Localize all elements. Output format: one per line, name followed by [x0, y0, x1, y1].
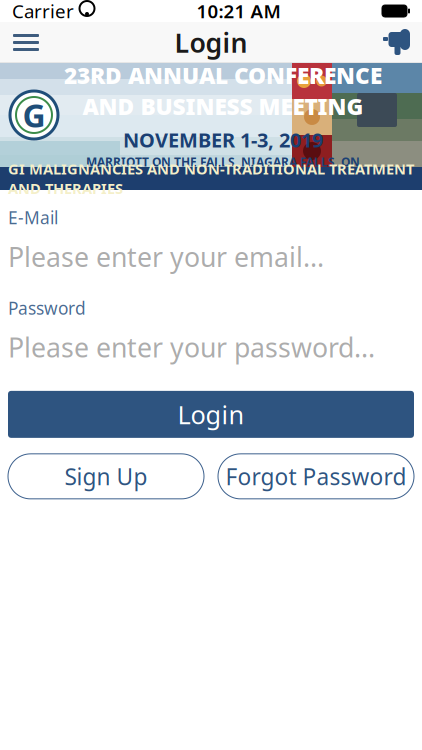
button[interactable]: Forgot Password [218, 454, 414, 499]
staticText: Sign Up [64, 461, 147, 491]
staticText: Please enter your email... [8, 239, 324, 274]
staticText: 10:21 AM [196, 0, 280, 23]
button[interactable]: Login [8, 391, 414, 438]
staticText: Login [174, 25, 247, 60]
staticText: 23RD ANNUAL CONFERENCE [64, 60, 382, 90]
staticText: AND BUSINESS MEETING [82, 91, 363, 121]
staticText: Forgot Password [225, 461, 406, 491]
staticText: Password [8, 296, 86, 319]
staticText: NOVEMBER 1-3, 2019 [123, 126, 323, 153]
staticText: Login [177, 397, 244, 431]
staticText: MARRIOTT ON THE FALLS, NIAGARA FALLS, ON [86, 154, 360, 170]
staticText: Carrier [12, 0, 74, 23]
staticText: Please enter your password... [8, 329, 375, 365]
staticText: G [22, 94, 45, 136]
button[interactable]: Menu [0, 20, 52, 64]
button[interactable]: Announcements [370, 20, 422, 64]
staticText: E-Mail [8, 206, 58, 229]
button[interactable]: Sign Up [8, 454, 204, 499]
staticText: GI MALIGNANCIES AND NON-TRADITIONAL TREA… [8, 159, 414, 198]
